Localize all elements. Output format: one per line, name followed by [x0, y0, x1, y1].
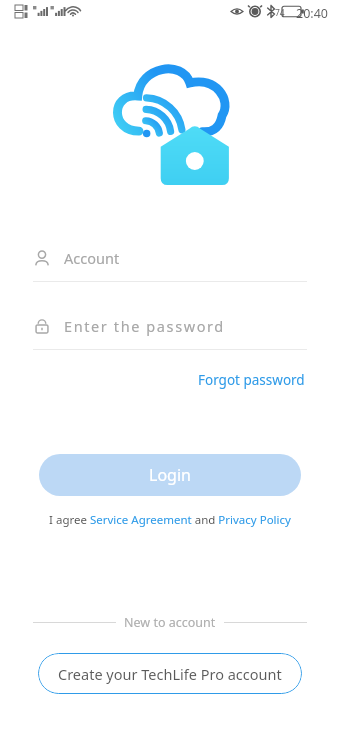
button[interactable]: Enter the password	[33, 310, 307, 342]
staticText: Login	[149, 464, 191, 486]
staticText: Enter the password	[64, 316, 225, 336]
staticText: Create your TechLife Pro account	[58, 664, 282, 684]
button[interactable]: Forgot password	[196, 368, 307, 392]
button[interactable]: Create your TechLife Pro account	[38, 653, 302, 694]
staticText: Account	[64, 248, 120, 268]
staticText: New to account	[124, 614, 216, 631]
staticText: 20:40	[296, 5, 328, 22]
staticText: I agree Service Agreement and Privacy Po…	[49, 512, 291, 528]
button[interactable]: Account	[33, 242, 307, 274]
staticText: 74	[275, 7, 285, 19]
button[interactable]: I agree Service Agreement and Privacy Po…	[45, 510, 295, 530]
button[interactable]: Login	[39, 454, 301, 496]
staticText: Forgot password	[198, 371, 305, 389]
